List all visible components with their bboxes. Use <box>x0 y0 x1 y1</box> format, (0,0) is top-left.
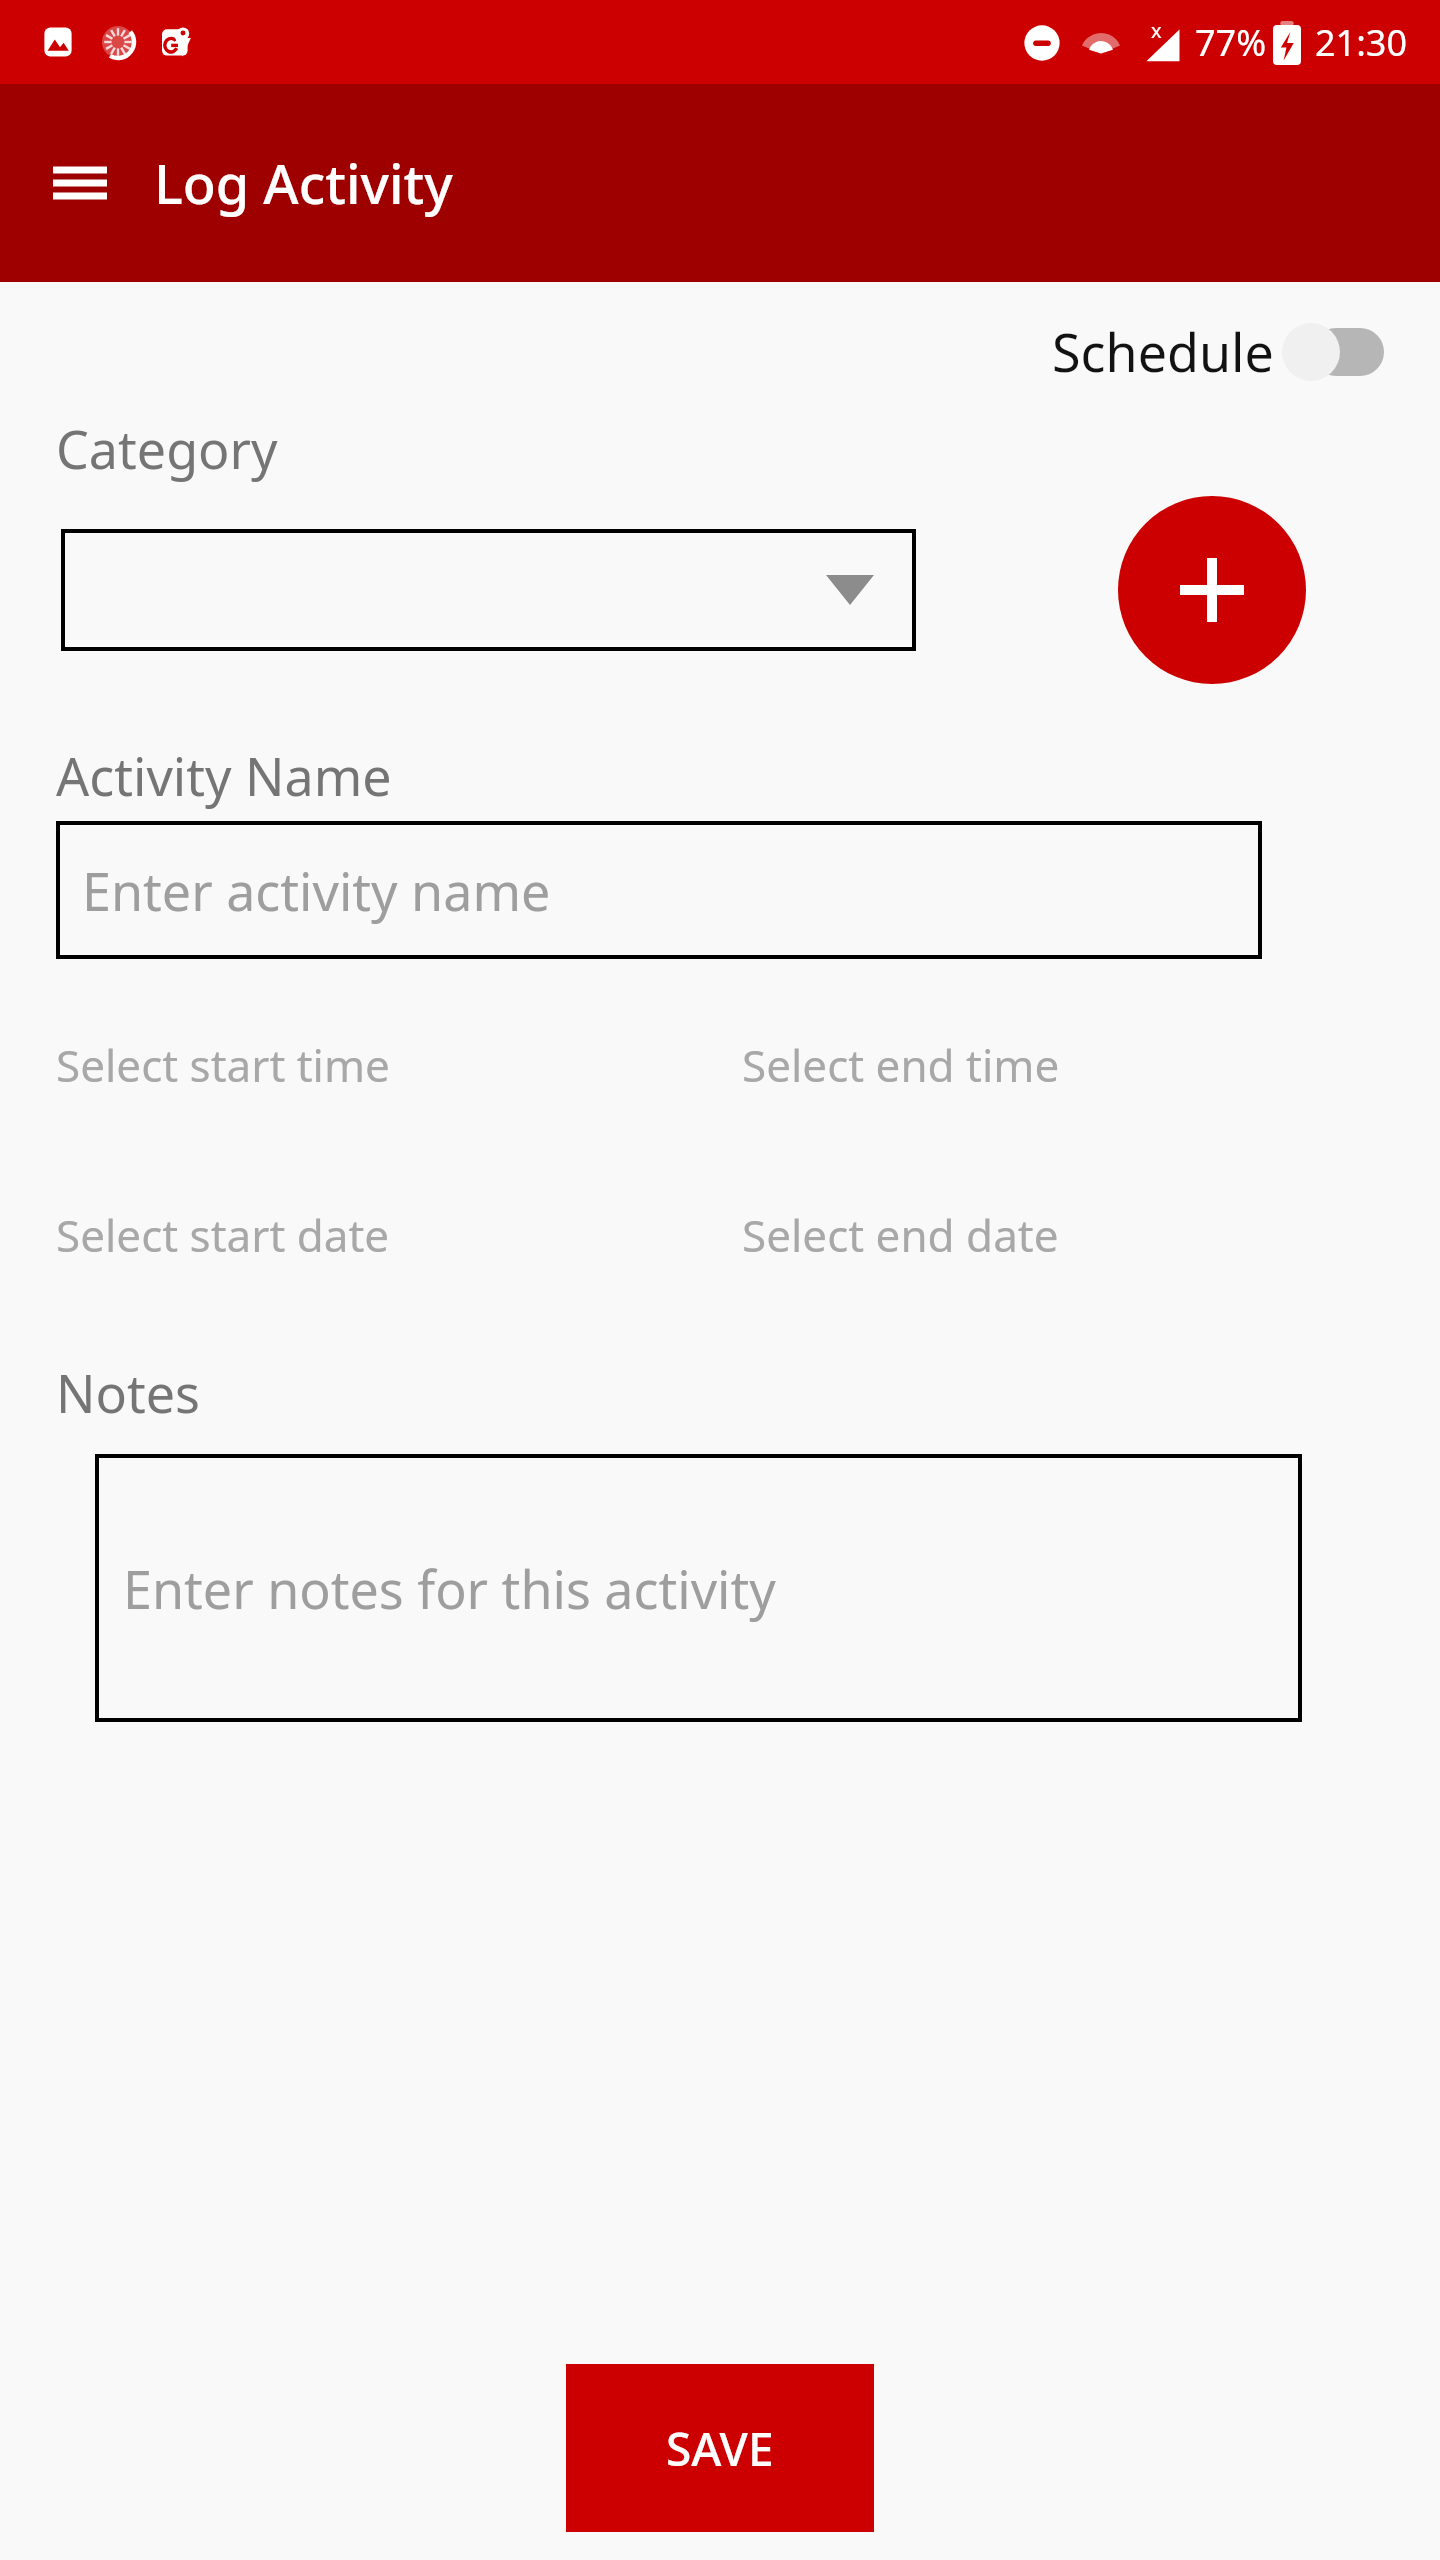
button[interactable]: Enter activity name <box>56 821 1262 959</box>
staticText: Select end date <box>742 1205 1059 1265</box>
staticText: Select start date <box>56 1205 390 1265</box>
button[interactable]: Enter notes for this activity <box>95 1454 1302 1722</box>
button[interactable]: Select start date <box>0 1193 720 1277</box>
staticText: SAVE <box>666 2417 774 2480</box>
staticText: Notes <box>56 1357 200 1428</box>
button[interactable]: Select end time <box>720 1023 1440 1107</box>
staticText: Log Activity <box>154 146 453 220</box>
staticText: Enter notes for this activity <box>123 1553 776 1624</box>
button[interactable]: Schedule <box>1046 308 1392 395</box>
button[interactable]: Select start time <box>0 1023 720 1107</box>
staticText: 77% <box>1195 18 1267 67</box>
button[interactable]: SAVE <box>566 2364 874 2532</box>
staticText: Enter activity name <box>82 855 551 926</box>
staticText: 21:30 <box>1315 18 1408 67</box>
button[interactable]: Select end date <box>720 1193 1440 1277</box>
staticText: Select end time <box>742 1035 1060 1095</box>
button[interactable]: Open navigation menu <box>44 147 116 219</box>
staticText: Activity Name <box>56 740 392 811</box>
staticText: Schedule <box>1052 316 1274 387</box>
staticText: x <box>1151 17 1162 44</box>
button[interactable] <box>61 529 916 651</box>
button[interactable]: Add category <box>1118 496 1306 684</box>
staticText: Select start time <box>56 1035 390 1095</box>
staticText: Category <box>56 413 278 484</box>
